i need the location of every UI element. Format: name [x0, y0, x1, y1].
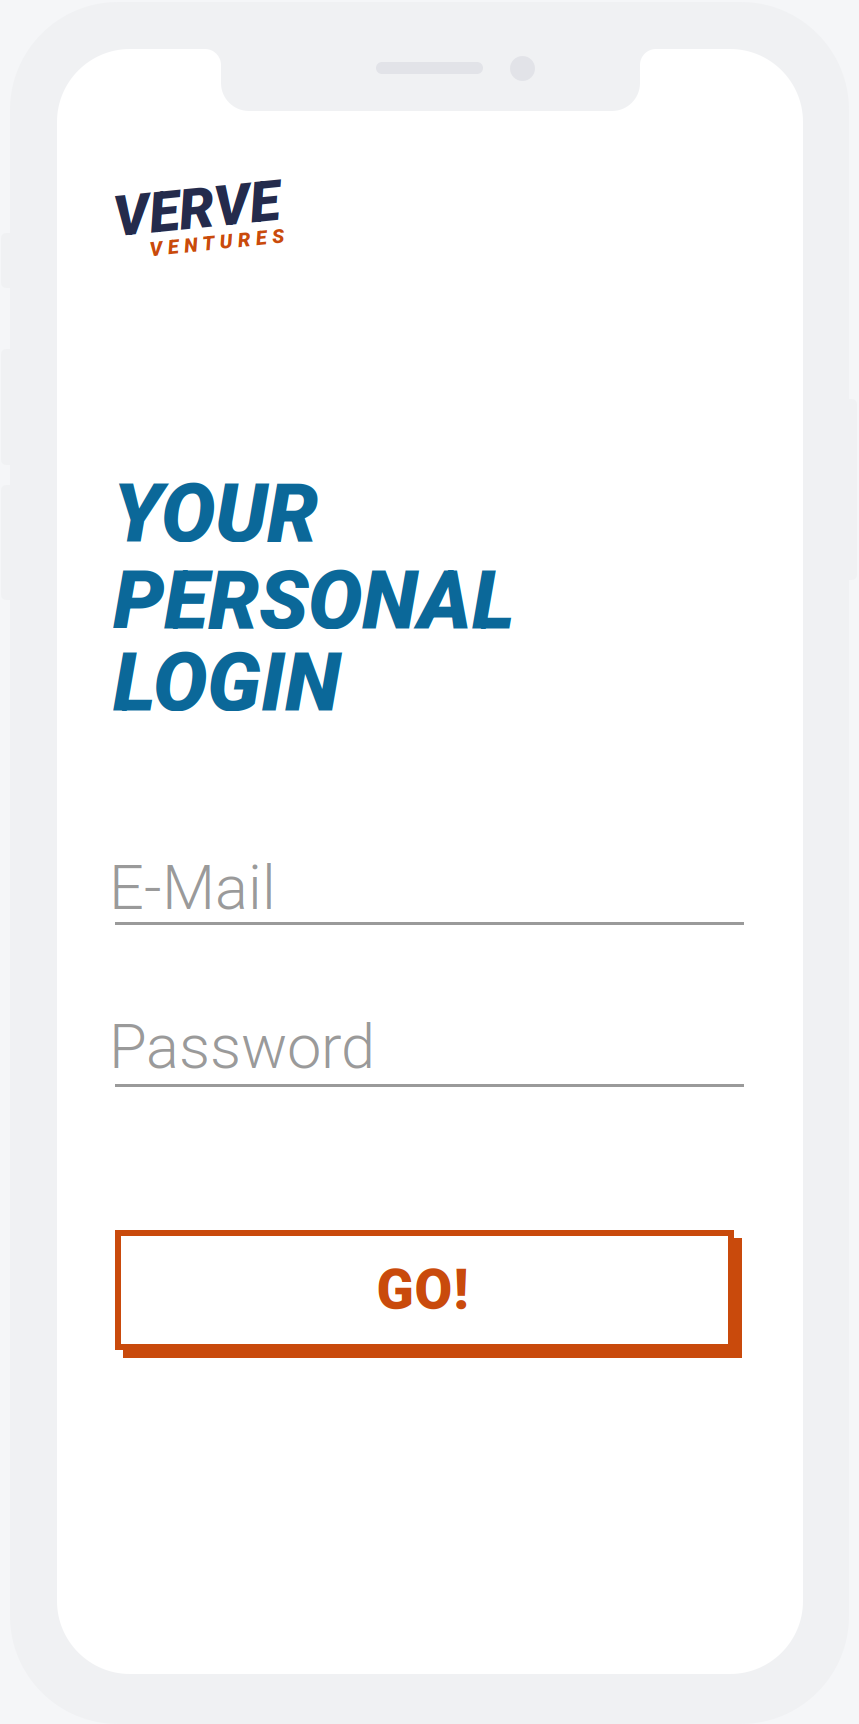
- button[interactable]: GO!: [115, 1230, 742, 1358]
- staticText: VENTURES: [147, 233, 282, 256]
- button[interactable]: Password: [115, 1011, 744, 1091]
- staticText: VERVE: [114, 176, 281, 242]
- staticText: E-Mail: [109, 852, 276, 924]
- staticText: PERSONAL: [113, 553, 515, 648]
- staticText: Password: [109, 1011, 375, 1083]
- staticText: YOUR: [113, 466, 318, 561]
- button[interactable]: E-Mail: [115, 852, 744, 929]
- staticText: GO!: [376, 1258, 468, 1322]
- staticText: LOGIN: [113, 635, 340, 730]
